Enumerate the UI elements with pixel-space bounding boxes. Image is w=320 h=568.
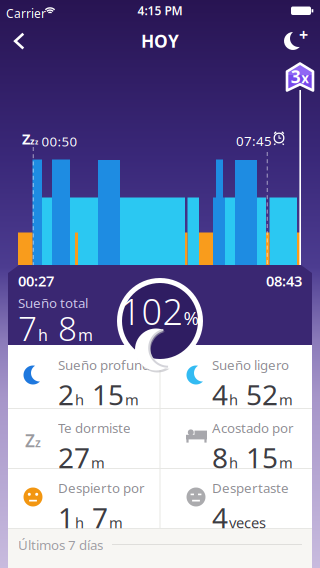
staticText: 00:27: [18, 271, 54, 290]
staticText: Sueño profundo: [58, 356, 158, 374]
staticText: 08:43: [266, 271, 302, 290]
staticText: h: [75, 513, 84, 532]
staticText: x: [301, 69, 309, 87]
staticText: 27: [58, 439, 90, 476]
staticText: 8: [49, 306, 77, 350]
staticText: Despertaste: [212, 479, 289, 497]
button[interactable]: [14, 33, 26, 50]
staticText: 1: [58, 499, 74, 536]
staticText: 7: [18, 306, 37, 350]
staticText: m: [78, 324, 93, 345]
staticText: Z: [25, 429, 35, 452]
staticText: m: [279, 453, 293, 472]
staticText: h: [229, 453, 238, 472]
staticText: z: [30, 135, 35, 147]
staticText: 2: [58, 376, 74, 413]
staticText: 15: [239, 439, 278, 476]
staticText: +: [299, 24, 308, 45]
staticText: 4: [212, 376, 228, 413]
staticText: Últimos 7 días: [18, 536, 103, 554]
button[interactable]: +: [283, 29, 309, 53]
staticText: h: [229, 390, 238, 409]
staticText: 4:15 PM: [137, 2, 182, 18]
staticText: Z: [22, 129, 30, 148]
staticText: 52: [239, 376, 278, 413]
staticText: %: [183, 305, 199, 330]
staticText: m: [109, 513, 123, 532]
staticText: Carrier: [6, 5, 46, 21]
staticText: 07:45: [236, 132, 272, 150]
staticText: 7: [85, 499, 108, 536]
staticText: m: [279, 390, 293, 409]
staticText: Despierto por: [58, 479, 145, 497]
staticText: veces: [229, 513, 266, 532]
staticText: 4: [212, 499, 228, 536]
staticText: m: [125, 390, 139, 409]
staticText: Sueño ligero: [212, 356, 289, 374]
staticText: 102: [120, 287, 183, 335]
staticText: 00:50: [41, 132, 77, 150]
staticText: h: [75, 390, 84, 409]
staticText: 8: [212, 439, 228, 476]
staticText: 3: [291, 65, 301, 88]
staticText: h: [38, 324, 48, 345]
staticText: z: [35, 435, 41, 450]
staticText: 15: [85, 376, 124, 413]
staticText: Sueño total: [18, 294, 88, 312]
staticText: z: [35, 137, 38, 146]
staticText: m: [91, 453, 105, 472]
staticText: Te dormiste: [58, 419, 131, 437]
staticText: HOY: [141, 29, 179, 52]
button[interactable]: 3: [285, 62, 315, 93]
staticText: Acostado por: [212, 419, 294, 437]
